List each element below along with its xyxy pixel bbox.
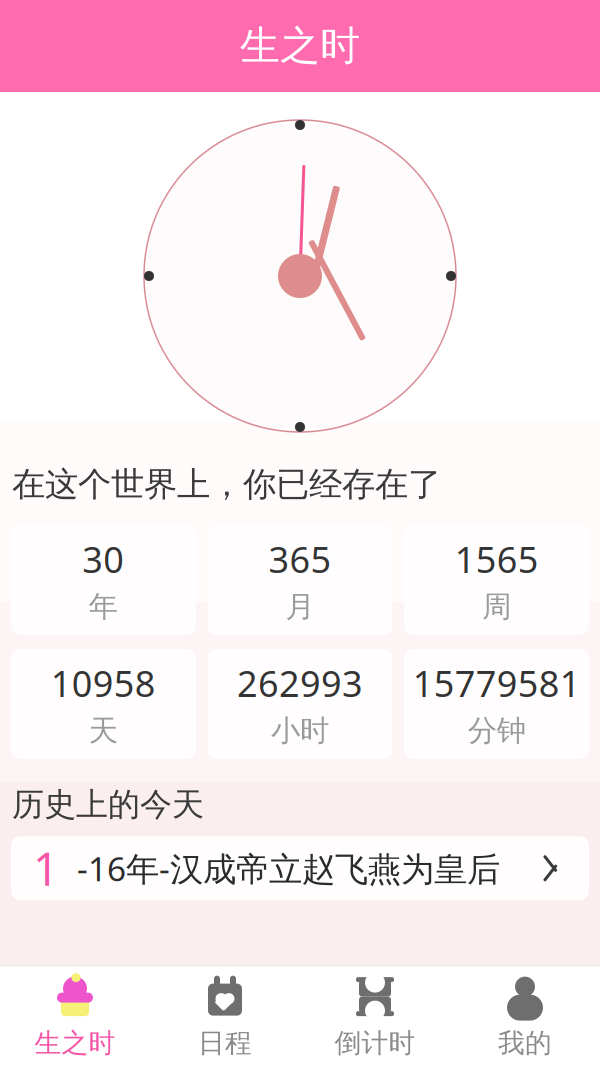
button[interactable]: 倒计时 [300,966,450,1067]
button[interactable]: 日程 [150,966,300,1067]
staticText: -16年-汉成帝立赵飞燕为皇后 [77,846,500,890]
staticText: 小时 [271,713,329,749]
staticText: 年 [89,589,118,625]
button[interactable]: 生之时 [0,966,150,1067]
staticText: 月 [285,589,314,625]
staticText: 15779581 [413,659,581,707]
staticText: 日程 [198,1027,252,1059]
staticText: 分钟 [468,713,526,749]
staticText: 365 [268,535,331,583]
staticText: 我的 [498,1027,552,1059]
staticText: 262993 [237,659,363,707]
staticText: 历史上的今天 [12,785,204,824]
staticText: 生之时 [240,21,360,70]
staticText: 周 [482,589,511,625]
staticText: 1565 [455,535,539,583]
staticText: 生之时 [34,1027,115,1059]
staticText: 1 [33,838,59,898]
button[interactable]: 我的 [450,966,600,1067]
staticText: 30 [82,535,124,583]
staticText: 在这个世界上，你已经存在了 [12,464,441,505]
staticText: 10958 [51,659,156,707]
staticText: 天 [89,713,118,749]
staticText: 倒计时 [334,1027,415,1059]
button[interactable]: 1 [11,836,589,900]
